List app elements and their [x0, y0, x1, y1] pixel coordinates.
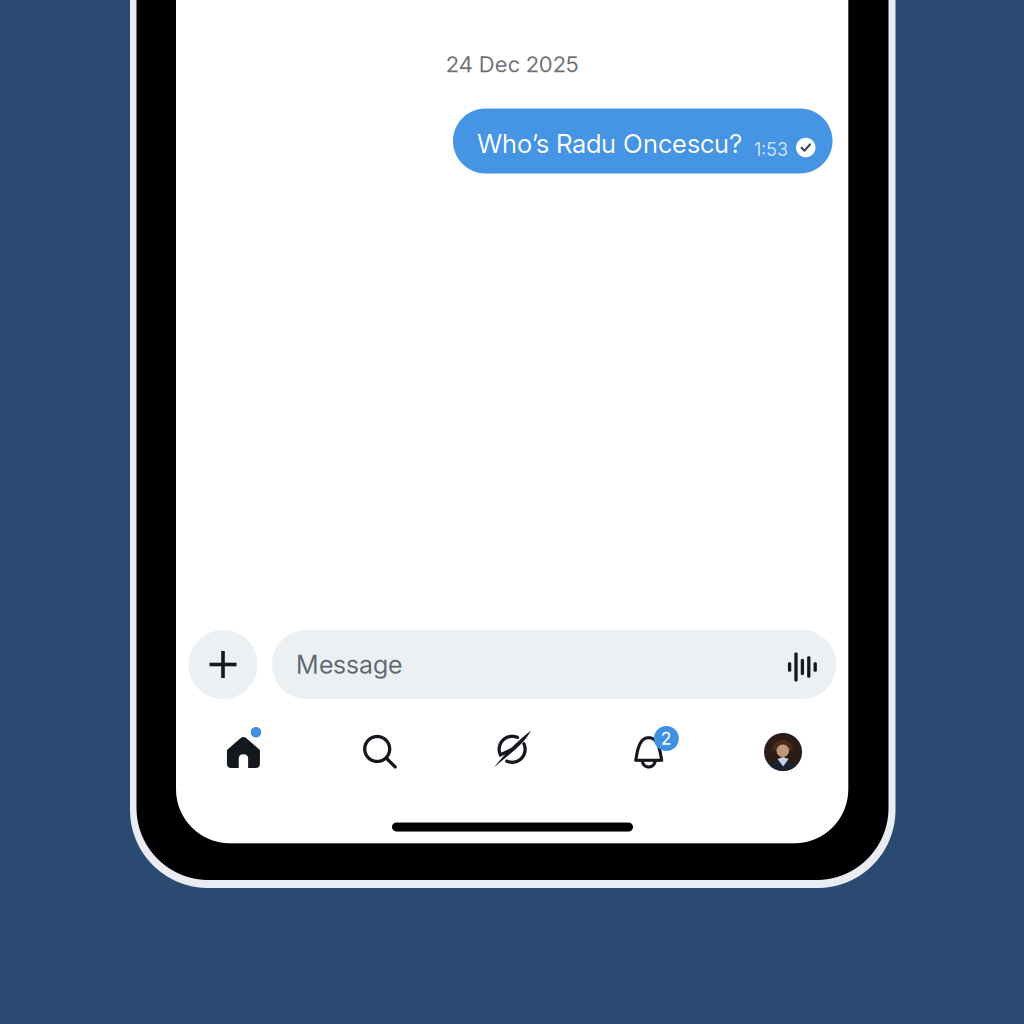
- button[interactable]: Add attachment: [188, 630, 257, 699]
- staticText: 24 Dec 2025: [446, 51, 579, 78]
- button[interactable]: Home: [213, 720, 273, 782]
- staticText: 2: [661, 728, 672, 749]
- staticText: Message: [296, 649, 402, 680]
- button[interactable]: Explore: [482, 720, 542, 782]
- staticText: Who’s Radu Oncescu?: [477, 128, 742, 159]
- button[interactable]: Profile: [751, 720, 811, 782]
- button[interactable]: Notifications: [617, 720, 677, 782]
- staticText: 1:53: [754, 139, 788, 160]
- button[interactable]: Message: [272, 630, 836, 699]
- button[interactable]: Search: [348, 720, 408, 782]
